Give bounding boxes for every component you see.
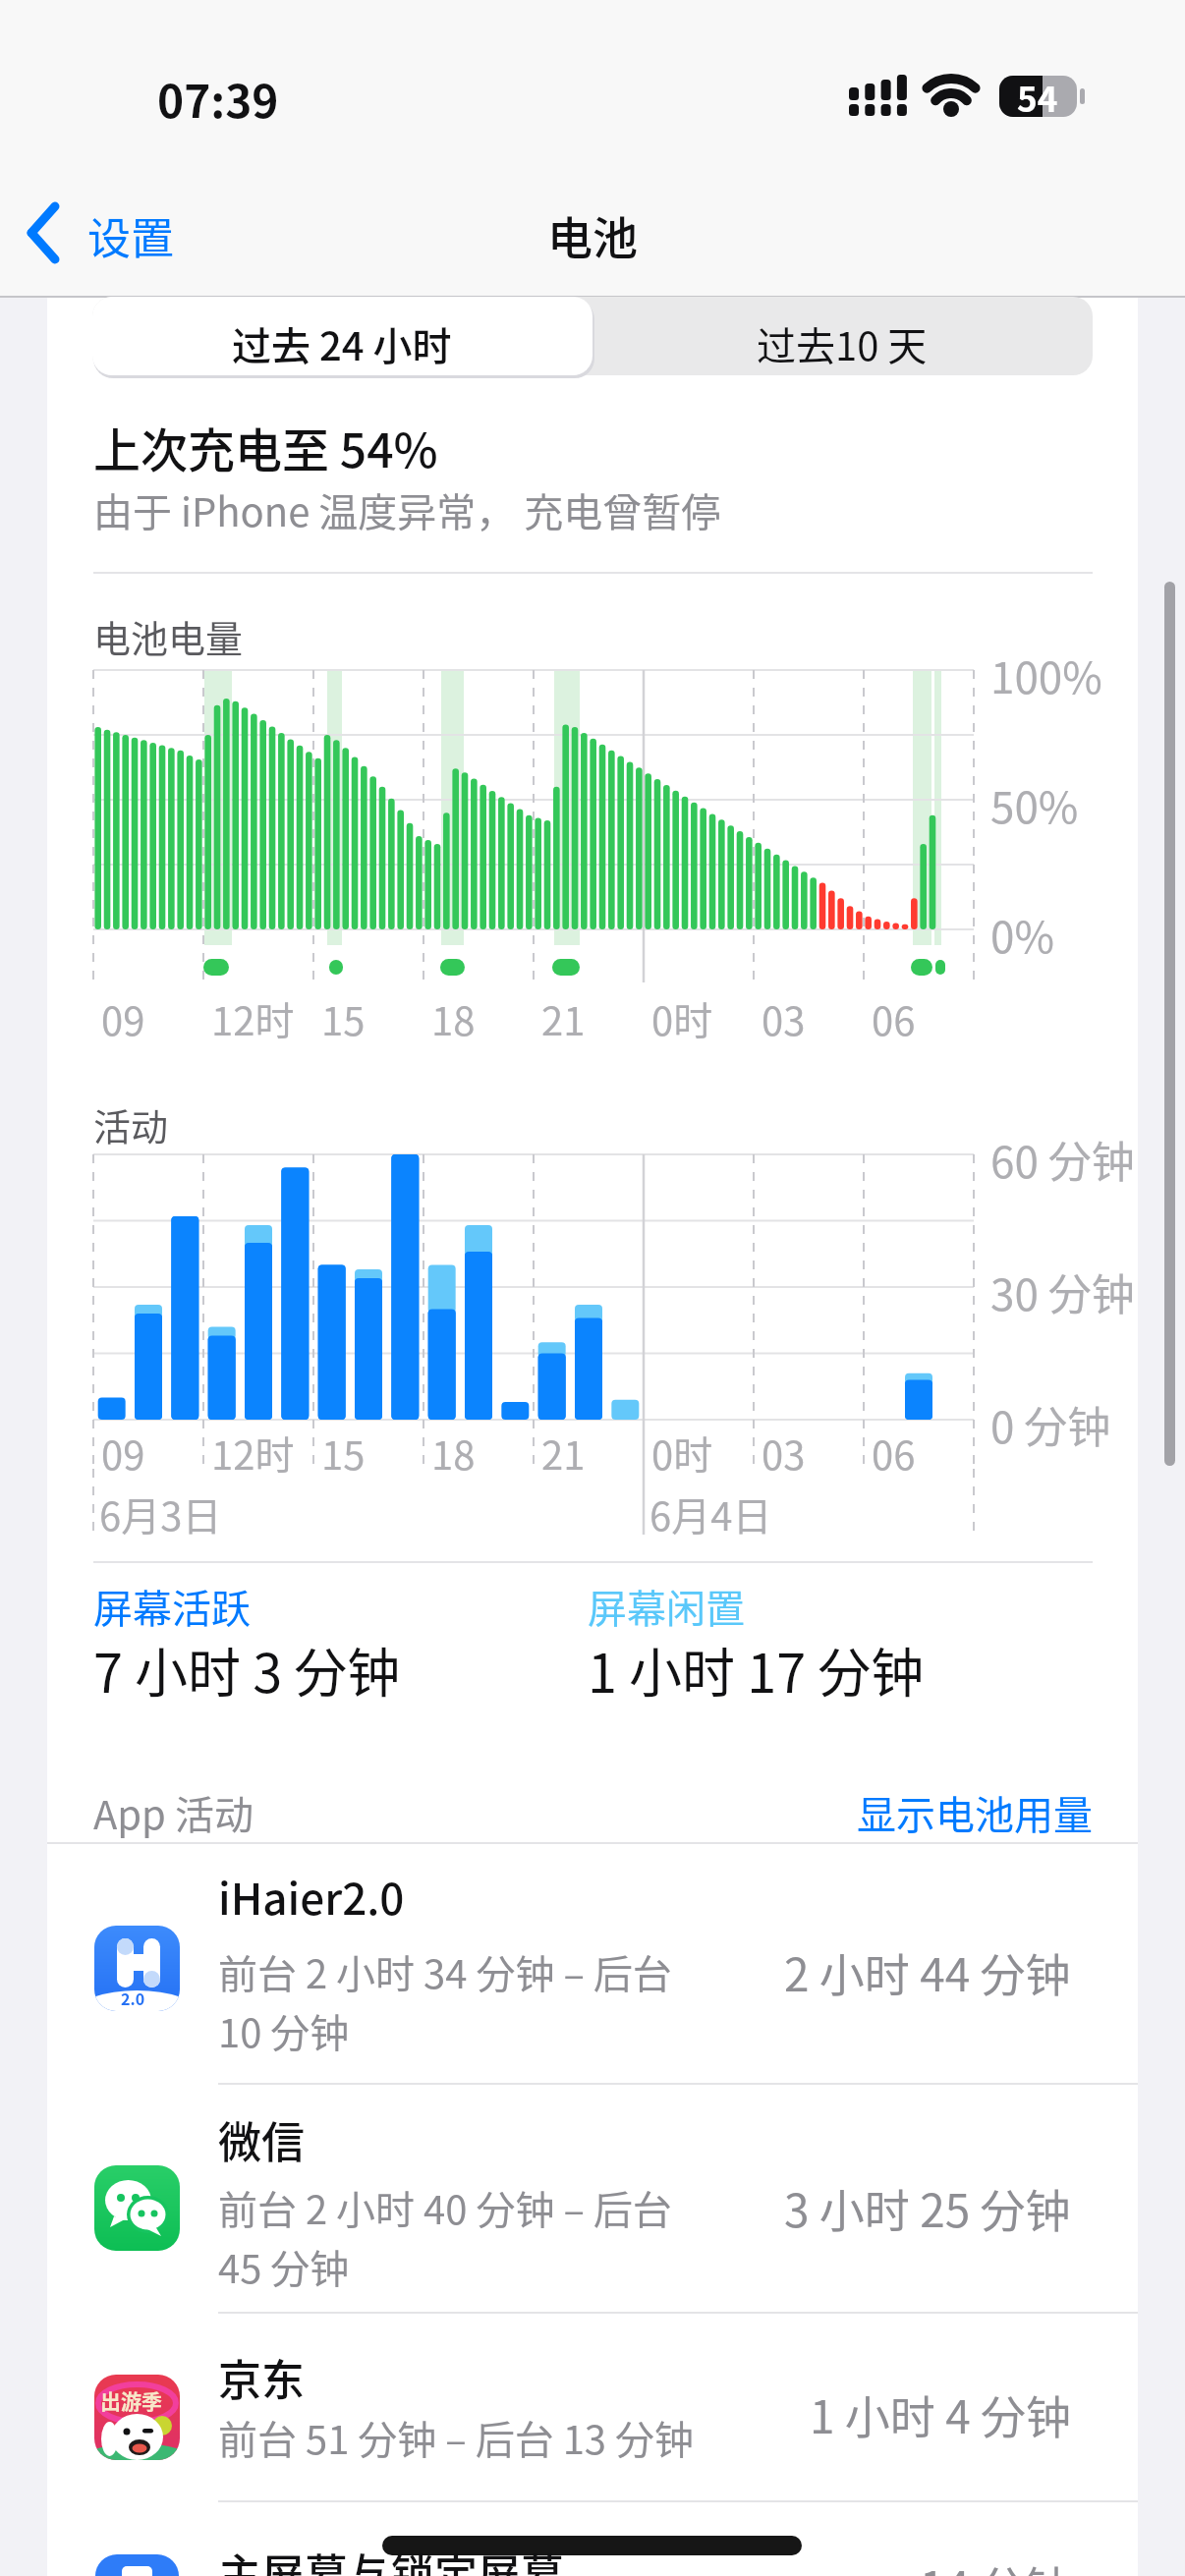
staticText: 设置: [87, 204, 174, 267]
staticText: iHaier2.0: [218, 1865, 405, 1928]
staticText: 2.0: [121, 1987, 145, 2009]
staticText: 出游季: [100, 2385, 162, 2415]
staticText: 微信: [218, 2108, 305, 2171]
staticText: 10 分钟: [218, 2002, 350, 2059]
staticText: 18: [431, 990, 476, 1047]
staticText: 54: [1017, 72, 1058, 122]
staticText: 12时: [211, 990, 295, 1047]
staticText: 6月3日: [99, 1485, 222, 1542]
staticText: 显示电池用量: [857, 1784, 1093, 1841]
staticText: 2 小时 44 分钟: [784, 1939, 1071, 2005]
staticText: 60 分钟: [990, 1128, 1135, 1191]
staticText: 21: [541, 1425, 586, 1482]
staticText: 3 小时 25 分钟: [784, 2175, 1071, 2241]
staticText: 电池电量: [93, 609, 244, 663]
staticText: 京东: [218, 2346, 305, 2409]
staticText: 12时: [211, 1425, 295, 1482]
button[interactable]: [20, 196, 197, 265]
button[interactable]: [47, 1845, 1138, 2084]
staticText: 主屏幕与锁定屏幕: [218, 2541, 564, 2576]
staticText: 07:39: [157, 66, 279, 132]
button[interactable]: [47, 2503, 1138, 2576]
staticText: 0时: [651, 1425, 713, 1482]
button[interactable]: [47, 2315, 1138, 2501]
staticText: 0时: [651, 990, 713, 1047]
staticText: 1 小时 17 分钟: [588, 1631, 925, 1708]
staticText: 18: [431, 1425, 476, 1482]
staticText: 09: [101, 990, 145, 1047]
staticText: 活动: [93, 1097, 169, 1151]
staticText: 21: [541, 990, 586, 1047]
staticText: 上次充电至 54%: [93, 413, 438, 481]
staticText: 前台 2 小时 40 分钟 – 后台: [218, 2179, 672, 2236]
staticText: 由于 iPhone 温度异常， 充电曾暂停: [93, 481, 721, 538]
button[interactable]: [592, 297, 1093, 375]
staticText: 15: [321, 990, 366, 1047]
staticText: 14 分钟: [920, 2552, 1071, 2576]
staticText: 45 分钟: [218, 2238, 350, 2295]
staticText: 0%: [990, 903, 1054, 966]
button[interactable]: 显示电池用量: [700, 1784, 1093, 1841]
button[interactable]: [47, 2086, 1138, 2313]
staticText: 过去10 天: [757, 315, 928, 372]
staticText: 过去 24 小时: [232, 315, 452, 372]
staticText: 前台 2 小时 34 分钟 – 后台: [218, 1943, 672, 2000]
staticText: 03: [762, 1425, 806, 1482]
staticText: 06: [872, 1425, 916, 1482]
staticText: 09: [101, 1425, 145, 1482]
staticText: 06: [872, 990, 916, 1047]
staticText: 100%: [990, 644, 1102, 706]
staticText: App 活动: [93, 1784, 254, 1841]
staticText: 电池: [547, 202, 638, 268]
staticText: 03: [762, 990, 806, 1047]
staticText: 0 分钟: [990, 1393, 1111, 1456]
staticText: 6月4日: [649, 1485, 772, 1542]
button[interactable]: [92, 297, 592, 375]
staticText: 屏幕闲置: [588, 1578, 745, 1635]
staticText: 50%: [990, 773, 1079, 836]
staticText: 前台 51 分钟 – 后台 13 分钟: [218, 2409, 694, 2466]
staticText: 屏幕活跃: [93, 1578, 251, 1635]
staticText: 7 小时 3 分钟: [93, 1631, 401, 1708]
staticText: 30 分钟: [990, 1260, 1135, 1323]
staticText: 15: [321, 1425, 366, 1482]
staticText: 1 小时 4 分钟: [810, 2381, 1071, 2447]
